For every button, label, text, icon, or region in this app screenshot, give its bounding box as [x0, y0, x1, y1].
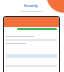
staticText: Security [24, 3, 38, 8]
staticText: Keep your account protected [20, 10, 43, 12]
